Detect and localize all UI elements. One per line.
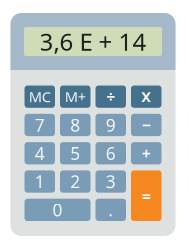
staticText: − — [142, 114, 151, 135]
button[interactable]: − — [131, 114, 161, 136]
button[interactable]: 8 — [60, 114, 90, 136]
button[interactable]: + — [131, 142, 161, 164]
button[interactable]: 0 — [24, 199, 90, 221]
button[interactable]: X — [131, 85, 161, 108]
button[interactable]: 6 — [95, 142, 126, 164]
button[interactable]: 1 — [24, 170, 55, 193]
button[interactable]: 5 — [60, 142, 90, 164]
staticText: 0 — [52, 198, 62, 221]
button[interactable]: . — [95, 199, 126, 221]
button[interactable]: ÷ — [95, 85, 126, 108]
staticText: 6 — [106, 142, 116, 165]
staticText: 3 — [106, 170, 116, 193]
staticText: 5 — [70, 142, 80, 165]
button[interactable]: 9 — [95, 114, 126, 136]
staticText: X — [141, 87, 151, 106]
staticText: MC — [29, 87, 51, 106]
staticText: ÷ — [106, 86, 115, 107]
staticText: 9 — [106, 113, 116, 136]
staticText: . — [108, 198, 113, 221]
staticText: = — [142, 185, 151, 206]
staticText: 3,6 E + 14 — [39, 26, 146, 57]
staticText: 4 — [35, 142, 45, 165]
button[interactable]: 4 — [24, 142, 55, 164]
button[interactable]: = — [131, 170, 161, 221]
staticText: 7 — [35, 113, 45, 136]
button[interactable]: M+ — [60, 85, 90, 108]
staticText: 8 — [70, 113, 80, 136]
staticText: 1 — [35, 170, 45, 193]
staticText: M+ — [65, 87, 86, 106]
button[interactable]: 7 — [24, 114, 55, 136]
staticText: + — [142, 143, 151, 164]
button[interactable]: MC — [24, 85, 55, 108]
button[interactable]: 3 — [95, 170, 126, 193]
button[interactable]: 2 — [60, 170, 90, 193]
staticText: 2 — [70, 170, 80, 193]
